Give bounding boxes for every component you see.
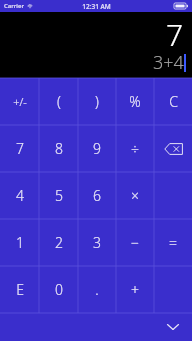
- button[interactable]: Subtract: [116, 219, 154, 266]
- button[interactable]: %: [116, 78, 154, 125]
- staticText: 1: [16, 233, 24, 252]
- staticText: 7: [16, 139, 24, 158]
- button[interactable]: .: [78, 266, 116, 313]
- staticText: 4: [16, 186, 24, 205]
- button[interactable]: Add: [116, 266, 154, 313]
- button[interactable]: Backspace: [154, 125, 192, 172]
- button[interactable]: =: [154, 219, 192, 266]
- button[interactable]: 0: [39, 266, 78, 313]
- staticText: ): [95, 92, 99, 111]
- staticText: ×: [131, 186, 139, 205]
- button[interactable]: 1: [0, 219, 39, 266]
- button[interactable]: Hide keypad: [163, 317, 183, 337]
- button[interactable]: (: [39, 78, 78, 125]
- staticText: 7: [166, 14, 184, 55]
- button[interactable]: 6: [78, 172, 116, 219]
- button[interactable]: 4: [0, 172, 39, 219]
- staticText: 9: [93, 139, 101, 158]
- staticText: =: [169, 233, 177, 252]
- staticText: C: [169, 92, 178, 111]
- button[interactable]: C: [154, 78, 192, 125]
- staticText: .: [95, 280, 99, 299]
- button[interactable]: E: [0, 266, 39, 313]
- staticText: 5: [55, 186, 63, 205]
- staticText: 0: [55, 280, 63, 299]
- staticText: 8: [55, 139, 63, 158]
- button[interactable]: +/-: [0, 78, 39, 125]
- staticText: ÷: [131, 139, 139, 158]
- staticText: +/-: [13, 94, 27, 109]
- staticText: −: [131, 233, 139, 252]
- staticText: Carrier: [4, 2, 24, 10]
- button[interactable]: Multiply: [116, 172, 154, 219]
- staticText: %: [129, 92, 141, 111]
- staticText: 2: [55, 233, 63, 252]
- staticText: E: [16, 280, 24, 299]
- button[interactable]: 8: [39, 125, 78, 172]
- staticText: 12:31 AM: [82, 2, 111, 11]
- button[interactable]: 9: [78, 125, 116, 172]
- button[interactable]: Divide: [116, 125, 154, 172]
- button[interactable]: ): [78, 78, 116, 125]
- staticText: 3: [93, 233, 101, 252]
- staticText: +: [131, 280, 139, 299]
- staticText: 6: [93, 186, 101, 205]
- button[interactable]: 2: [39, 219, 78, 266]
- button[interactable]: 7: [0, 125, 39, 172]
- staticText: (: [57, 92, 61, 111]
- button[interactable]: 5: [39, 172, 78, 219]
- button[interactable]: 3: [78, 219, 116, 266]
- staticText: 3+4: [153, 50, 184, 75]
